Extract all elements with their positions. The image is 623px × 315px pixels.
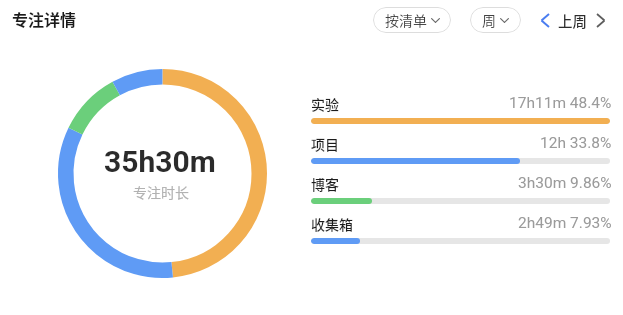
staticText: 按清单 xyxy=(385,10,427,30)
staticText: 2h49m 7.93% xyxy=(518,214,612,232)
button[interactable]: 上一周 xyxy=(534,7,556,33)
staticText: 17h11m 48.4% xyxy=(509,94,612,112)
staticText: 3h30m 9.86% xyxy=(518,174,612,192)
staticText: 博客 xyxy=(311,174,339,194)
staticText: 12h 33.8% xyxy=(540,134,612,152)
button[interactable]: 周 xyxy=(470,7,521,33)
staticText: 专注时长 xyxy=(133,182,189,202)
button[interactable]: 项目 xyxy=(311,134,610,174)
staticText: 实验 xyxy=(311,94,339,114)
staticText: 项目 xyxy=(311,134,339,154)
staticText: 专注详情 xyxy=(12,7,77,30)
button[interactable]: 按清单 xyxy=(373,7,451,33)
button[interactable]: 下一周 xyxy=(590,7,612,33)
staticText: 收集箱 xyxy=(311,214,353,234)
button[interactable]: 实验 xyxy=(311,94,610,134)
button[interactable]: 收集箱 xyxy=(311,214,610,254)
staticText: 周 xyxy=(482,10,496,30)
staticText: 35h30m xyxy=(104,144,216,179)
button[interactable]: 上周 xyxy=(558,10,587,31)
button[interactable]: 博客 xyxy=(311,174,610,214)
